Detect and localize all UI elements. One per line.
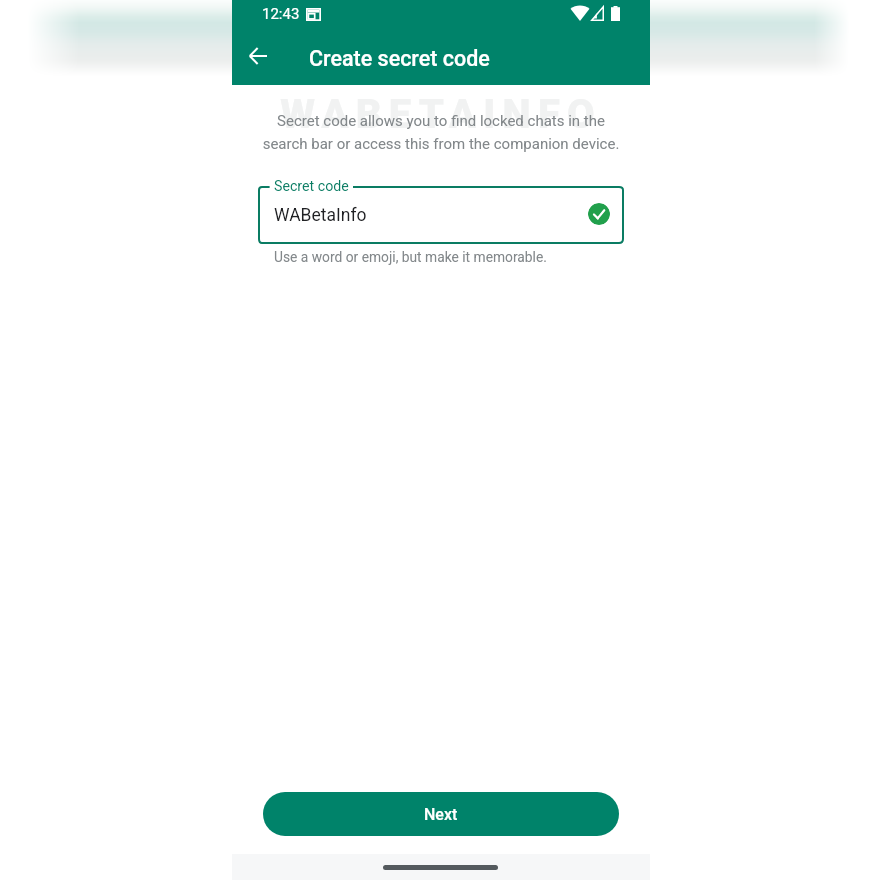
staticText: Create secret code: [309, 46, 490, 71]
staticText: WABetaInfo: [274, 205, 367, 226]
button[interactable]: Valid code: [588, 203, 610, 225]
button[interactable]: WABetaInfo: [258, 186, 624, 244]
staticText: Secret code: [274, 178, 349, 195]
staticText: Next: [424, 805, 458, 824]
staticText: WABETAINFO: [232, 91, 650, 138]
staticText: 12:43: [262, 5, 300, 23]
staticText: Secret code allows you to find locked ch…: [259, 112, 623, 153]
staticText: Use a word or emoji, but make it memorab…: [274, 249, 547, 265]
button[interactable]: Back: [235, 33, 281, 79]
button[interactable]: Next: [263, 792, 619, 836]
